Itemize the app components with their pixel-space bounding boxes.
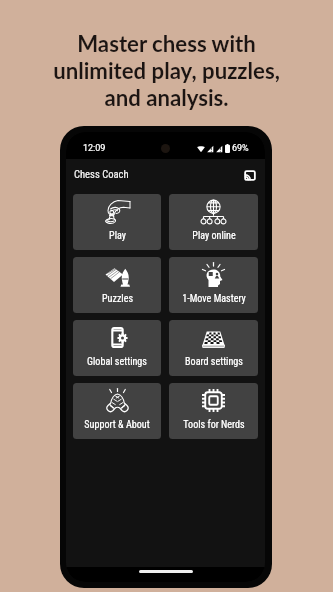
button[interactable]: Global settings: [73, 320, 161, 376]
staticText: 12:09: [83, 143, 106, 154]
staticText: Play online: [192, 230, 236, 242]
button[interactable]: Support & About: [73, 383, 161, 439]
button[interactable]: Cast screen: [240, 165, 260, 185]
staticText: Tools for Nerds: [183, 419, 245, 431]
staticText: 69%: [232, 143, 249, 154]
button[interactable]: Play: [73, 194, 161, 250]
button[interactable]: Tools for Nerds: [169, 383, 258, 439]
button[interactable]: Board settings: [169, 320, 258, 376]
staticText: Support & About: [84, 419, 150, 431]
button[interactable]: 1-Move Mastery: [169, 257, 258, 313]
staticText: 1-Move Mastery: [182, 293, 246, 305]
button[interactable]: Puzzles: [73, 257, 161, 313]
button[interactable]: Play online: [169, 194, 258, 250]
staticText: Puzzles: [102, 293, 133, 305]
staticText: Board settings: [185, 356, 243, 368]
staticText: Play: [109, 230, 126, 242]
staticText: Master chess with unlimited play, puzzle…: [0, 30, 333, 111]
staticText: Global settings: [87, 356, 147, 368]
staticText: Chess Coach: [74, 168, 129, 180]
